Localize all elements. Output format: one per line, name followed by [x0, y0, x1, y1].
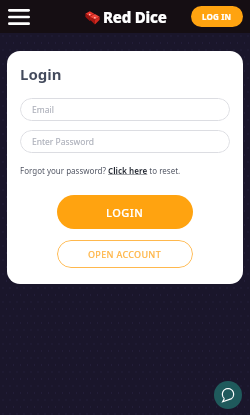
staticText: Login [20, 64, 62, 84]
button[interactable]: Enter Password [20, 130, 230, 153]
button[interactable]: OPEN ACCOUNT [57, 240, 193, 268]
button[interactable]: Red Dice [84, 7, 167, 27]
staticText: Email [32, 104, 54, 116]
button[interactable]: LOG IN [191, 6, 243, 27]
staticText: Forgot your password? Click here to rese… [20, 165, 181, 176]
button[interactable]: Menu [5, 3, 33, 31]
staticText: LOGIN [106, 205, 144, 220]
button[interactable]: Chat support [214, 381, 242, 409]
staticText: LOG IN [202, 11, 232, 22]
staticText: Enter Password [32, 136, 95, 148]
button[interactable]: Email [20, 98, 230, 121]
staticText: Red Dice [103, 7, 167, 27]
button[interactable]: LOGIN [57, 195, 193, 229]
staticText: OPEN ACCOUNT [88, 248, 162, 260]
